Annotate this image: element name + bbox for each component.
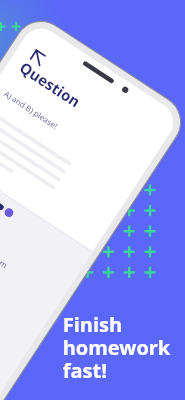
button[interactable]: Finish homework fast	[0, 0, 185, 400]
